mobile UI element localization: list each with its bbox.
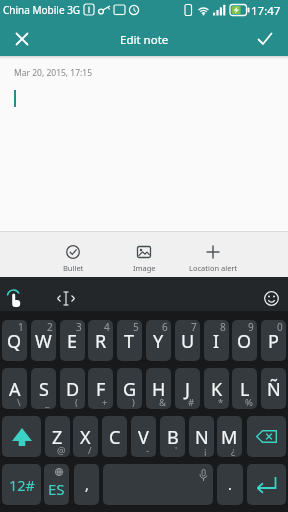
staticText: ( bbox=[75, 396, 78, 409]
staticText: China Mobile 3G bbox=[3, 3, 81, 17]
staticText: N bbox=[195, 425, 209, 450]
staticText: 2 bbox=[47, 320, 53, 334]
staticText: P bbox=[268, 329, 279, 354]
staticText: K bbox=[211, 377, 223, 402]
staticText: , bbox=[85, 475, 89, 494]
button[interactable] bbox=[9, 26, 34, 51]
button[interactable]: A bbox=[2, 368, 27, 409]
button[interactable]: P bbox=[261, 320, 286, 361]
staticText: & bbox=[159, 396, 166, 409]
staticText: ¡ bbox=[204, 444, 207, 457]
staticText: M bbox=[221, 425, 238, 450]
staticText: F bbox=[96, 377, 106, 402]
button[interactable]: Bullet bbox=[38, 244, 108, 277]
staticText: Location alert bbox=[189, 263, 238, 273]
button[interactable]: G bbox=[117, 368, 142, 409]
button[interactable]: 12# bbox=[2, 464, 41, 505]
staticText: C bbox=[109, 425, 121, 450]
button[interactable]: O bbox=[232, 320, 257, 361]
button[interactable]: L bbox=[232, 368, 257, 409]
button[interactable]: V bbox=[131, 416, 156, 457]
button[interactable]: U bbox=[175, 320, 200, 361]
staticText: X bbox=[80, 425, 91, 450]
staticText: ¿ bbox=[231, 444, 236, 457]
button[interactable] bbox=[247, 464, 286, 505]
staticText: Y bbox=[153, 329, 164, 354]
staticText: @ bbox=[57, 444, 66, 457]
button[interactable]: E bbox=[60, 320, 85, 361]
button[interactable]: J bbox=[175, 368, 200, 409]
button[interactable]: Y bbox=[146, 320, 171, 361]
staticText: D bbox=[66, 377, 80, 402]
button[interactable]: Ñ bbox=[261, 368, 286, 409]
staticText: * bbox=[218, 396, 224, 409]
button[interactable]: T bbox=[117, 320, 142, 361]
staticText: 0 bbox=[277, 320, 283, 334]
button[interactable]: S bbox=[31, 368, 56, 409]
button[interactable]: Z bbox=[45, 416, 70, 457]
button[interactable]: H bbox=[146, 368, 171, 409]
staticText: A bbox=[9, 377, 21, 402]
staticText: Image bbox=[133, 263, 156, 273]
staticText: 3 bbox=[76, 320, 82, 334]
staticText: W bbox=[35, 329, 52, 354]
button[interactable]: B bbox=[160, 416, 185, 457]
staticText: ES bbox=[48, 479, 65, 499]
button[interactable]: , bbox=[74, 464, 99, 505]
staticText: 12# bbox=[9, 475, 35, 495]
button[interactable]: . bbox=[217, 464, 243, 505]
staticText: Bullet bbox=[63, 263, 84, 273]
button[interactable]: I bbox=[204, 320, 229, 361]
staticText: Ñ bbox=[267, 377, 281, 402]
staticText: + bbox=[102, 396, 108, 409]
button[interactable]: ES bbox=[44, 464, 69, 505]
button[interactable] bbox=[247, 416, 286, 457]
staticText: L bbox=[240, 377, 250, 402]
staticText: R bbox=[95, 329, 107, 354]
staticText: V bbox=[138, 425, 149, 450]
staticText: 7 bbox=[191, 320, 197, 334]
staticText: 4 bbox=[104, 320, 110, 334]
staticText: ) bbox=[132, 396, 135, 409]
staticText: 1 bbox=[18, 320, 24, 334]
button[interactable]: M bbox=[217, 416, 242, 457]
button[interactable]: Image bbox=[109, 244, 179, 277]
staticText: 5 bbox=[133, 320, 139, 334]
staticText: G bbox=[123, 377, 137, 402]
button[interactable]: Q bbox=[2, 320, 27, 361]
staticText: I bbox=[213, 329, 220, 354]
staticText: 17:47 bbox=[251, 3, 281, 19]
button[interactable]: W bbox=[31, 320, 56, 361]
staticText: U bbox=[181, 329, 195, 354]
staticText: - bbox=[146, 444, 150, 457]
staticText: S bbox=[39, 377, 49, 402]
staticText: Q bbox=[7, 329, 22, 354]
button[interactable]: Location alert bbox=[178, 244, 248, 277]
button[interactable]: N bbox=[189, 416, 214, 457]
button[interactable]: K bbox=[204, 368, 229, 409]
staticText: B bbox=[167, 425, 179, 450]
staticText: / bbox=[88, 444, 92, 457]
staticText: _ bbox=[45, 396, 50, 409]
button[interactable]: R bbox=[88, 320, 113, 361]
staticText: O bbox=[237, 329, 252, 354]
staticText: J bbox=[185, 377, 190, 402]
button[interactable] bbox=[103, 464, 213, 505]
button[interactable]: F bbox=[88, 368, 113, 409]
button[interactable]: D bbox=[60, 368, 85, 409]
staticText: Edit note bbox=[120, 32, 169, 48]
button[interactable]: C bbox=[102, 416, 127, 457]
staticText: 9 bbox=[248, 320, 254, 334]
button[interactable] bbox=[252, 26, 278, 52]
staticText: . bbox=[228, 475, 232, 494]
staticText: \ bbox=[17, 396, 21, 409]
staticText: Mar 20, 2015, 17:15 bbox=[14, 67, 93, 79]
staticText: 8 bbox=[220, 320, 226, 334]
staticText: % bbox=[245, 396, 253, 409]
staticText: 6 bbox=[162, 320, 168, 334]
staticText: T bbox=[124, 329, 135, 354]
staticText: E bbox=[67, 329, 78, 354]
button[interactable]: X bbox=[73, 416, 98, 457]
button[interactable] bbox=[2, 416, 41, 457]
staticText: Z bbox=[52, 425, 63, 450]
